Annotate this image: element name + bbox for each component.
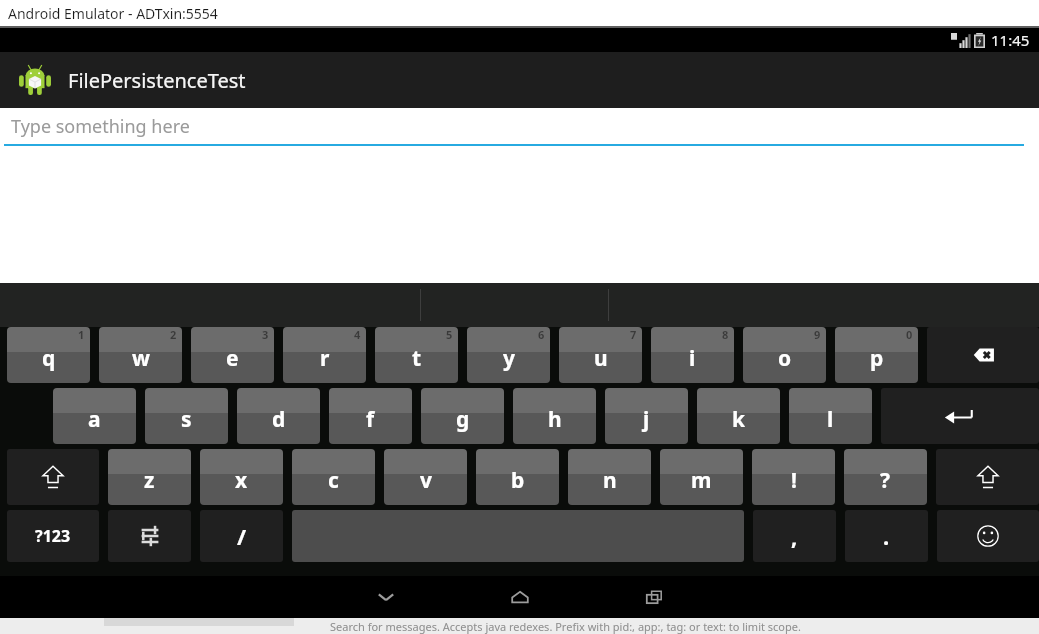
staticText: r (320, 344, 330, 373)
staticText: j (643, 405, 650, 434)
staticText: k (732, 405, 746, 434)
staticText: / (237, 521, 247, 551)
button[interactable]: . (845, 510, 928, 562)
staticText: 6 (538, 327, 545, 342)
staticText: c (328, 466, 339, 495)
staticText: t (412, 344, 422, 373)
staticText: 9 (814, 327, 821, 342)
button[interactable]: f (329, 388, 412, 444)
button[interactable]: n (568, 449, 651, 505)
staticText: f (366, 405, 375, 434)
button[interactable]: Shift (7, 449, 99, 505)
button[interactable]: z (108, 449, 191, 505)
staticText: 1 (78, 327, 85, 342)
staticText: ? (880, 466, 891, 495)
button[interactable]: 6 (467, 327, 550, 383)
staticText: 3 (262, 327, 269, 342)
staticText: h (548, 405, 562, 434)
staticText: l (827, 405, 834, 434)
staticText: y (503, 344, 515, 373)
button[interactable]: d (237, 388, 320, 444)
staticText: w (132, 344, 150, 373)
staticText: p (870, 344, 884, 373)
staticText: 11:45 (991, 30, 1030, 50)
staticText: a (88, 405, 101, 434)
staticText: g (456, 405, 470, 434)
button[interactable]: j (605, 388, 688, 444)
button[interactable]: , (753, 510, 836, 562)
staticText: ?123 (35, 525, 71, 547)
button[interactable]: 8 (651, 327, 734, 383)
staticText: z (144, 466, 155, 495)
button[interactable]: ? (844, 449, 927, 505)
staticText: 7 (630, 327, 637, 342)
button[interactable]: b (476, 449, 559, 505)
button[interactable]: s (145, 388, 228, 444)
button[interactable]: 1 (7, 327, 90, 383)
button[interactable]: Home (484, 576, 556, 618)
button[interactable]: Enter (881, 388, 1039, 444)
staticText: u (594, 344, 608, 373)
staticText: i (689, 344, 696, 373)
staticText: b (511, 466, 525, 495)
staticText: n (603, 466, 617, 495)
staticText: s (181, 405, 192, 434)
staticText: 0 (906, 327, 913, 342)
button[interactable]: 7 (559, 327, 642, 383)
button[interactable]: k (697, 388, 780, 444)
button[interactable]: FilePersistenceTest (0, 52, 1039, 108)
button[interactable]: Hide keyboard (350, 576, 422, 618)
button[interactable]: h (513, 388, 596, 444)
button[interactable]: m (660, 449, 743, 505)
button[interactable]: 4 (283, 327, 366, 383)
button[interactable]: ! (752, 449, 835, 505)
staticText: . (883, 521, 890, 551)
button[interactable]: 0 (835, 327, 918, 383)
button[interactable]: Type something here (0, 114, 1039, 146)
staticText: , (791, 521, 798, 551)
staticText: d (272, 405, 286, 434)
button[interactable]: v (384, 449, 467, 505)
staticText: q (42, 344, 56, 373)
button[interactable]: 3 (191, 327, 274, 383)
staticText: x (235, 466, 248, 495)
button[interactable]: l (789, 388, 872, 444)
staticText: e (226, 344, 239, 373)
button[interactable]: g (421, 388, 504, 444)
button[interactable]: / (200, 510, 283, 562)
button[interactable]: x (200, 449, 283, 505)
button[interactable]: ?123 (7, 510, 99, 562)
staticText: Android Emulator - ADTxin:5554 (8, 4, 218, 23)
button[interactable]: Recent apps (618, 576, 690, 618)
staticText: ! (791, 466, 797, 495)
staticText: Search for messages. Accepts java redexe… (330, 619, 801, 634)
staticText: v (420, 466, 432, 495)
staticText: 4 (354, 327, 361, 342)
button[interactable]: Delete (927, 327, 1039, 383)
button[interactable]: Shift (936, 449, 1039, 505)
button[interactable]: c (292, 449, 375, 505)
staticText: m (691, 466, 712, 495)
staticText: Type something here (11, 114, 190, 139)
button[interactable]: Input settings (108, 510, 191, 562)
staticText: o (778, 344, 792, 373)
staticText: 5 (446, 327, 453, 342)
staticText: 2 (170, 327, 177, 342)
button[interactable]: a (53, 388, 136, 444)
button[interactable]: 9 (743, 327, 826, 383)
staticText: FilePersistenceTest (68, 67, 246, 94)
button[interactable]: 2 (99, 327, 182, 383)
button[interactable]: Emoji (937, 510, 1039, 562)
button[interactable]: 5 (375, 327, 458, 383)
staticText: 8 (722, 327, 729, 342)
